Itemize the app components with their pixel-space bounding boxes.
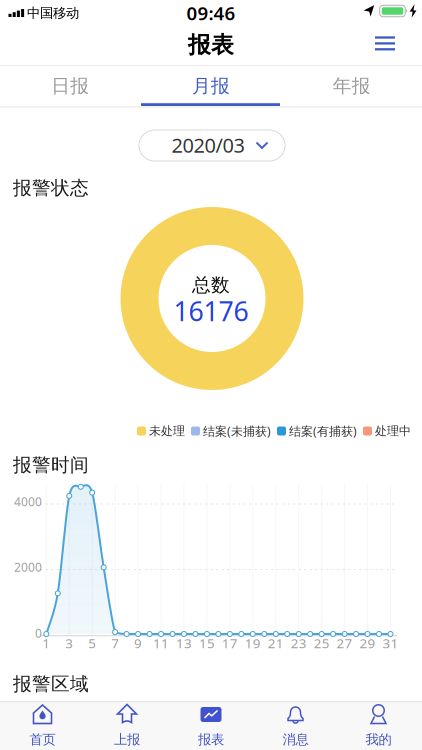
staticText: 2020/03: [171, 132, 244, 158]
staticText: 13: [176, 634, 192, 652]
staticText: 0: [35, 625, 42, 641]
staticText: 消息: [282, 731, 308, 748]
staticText: 19: [245, 634, 261, 652]
staticText: 上报: [114, 731, 140, 748]
staticText: 报表: [198, 731, 224, 748]
staticText: 31: [382, 634, 398, 652]
staticText: 5: [88, 634, 96, 652]
staticText: 27: [337, 634, 353, 652]
staticText: 报警区域: [13, 672, 89, 695]
staticText: 17: [222, 634, 238, 652]
staticText: 中国移动: [27, 5, 79, 21]
staticText: 29: [359, 634, 375, 652]
staticText: 月报: [192, 74, 230, 97]
staticText: 16176: [173, 293, 248, 329]
staticText: 总数: [192, 273, 230, 296]
staticText: 首页: [29, 731, 55, 748]
staticText: 4000: [14, 493, 42, 509]
staticText: 15: [199, 634, 215, 652]
staticText: 报表: [188, 31, 234, 59]
staticText: 结案(未捕获): [203, 423, 271, 439]
staticText: 2000: [14, 559, 42, 575]
staticText: 25: [314, 634, 330, 652]
staticText: 09:46: [186, 1, 235, 25]
staticText: 23: [291, 634, 307, 652]
staticText: 年报: [333, 74, 371, 97]
staticText: 未处理: [149, 424, 185, 438]
staticText: 日报: [51, 74, 89, 97]
staticText: 我的: [365, 731, 391, 748]
staticText: 报警时间: [13, 453, 89, 476]
staticText: 21: [268, 634, 284, 652]
staticText: 3: [65, 634, 73, 652]
staticText: 处理中: [375, 424, 411, 438]
staticText: 9: [134, 634, 142, 652]
staticText: 1: [42, 634, 50, 652]
staticText: 报警状态: [13, 176, 89, 199]
staticText: 11: [153, 634, 169, 652]
staticText: 7: [111, 634, 119, 652]
staticText: 结案(有捕获): [289, 423, 357, 439]
